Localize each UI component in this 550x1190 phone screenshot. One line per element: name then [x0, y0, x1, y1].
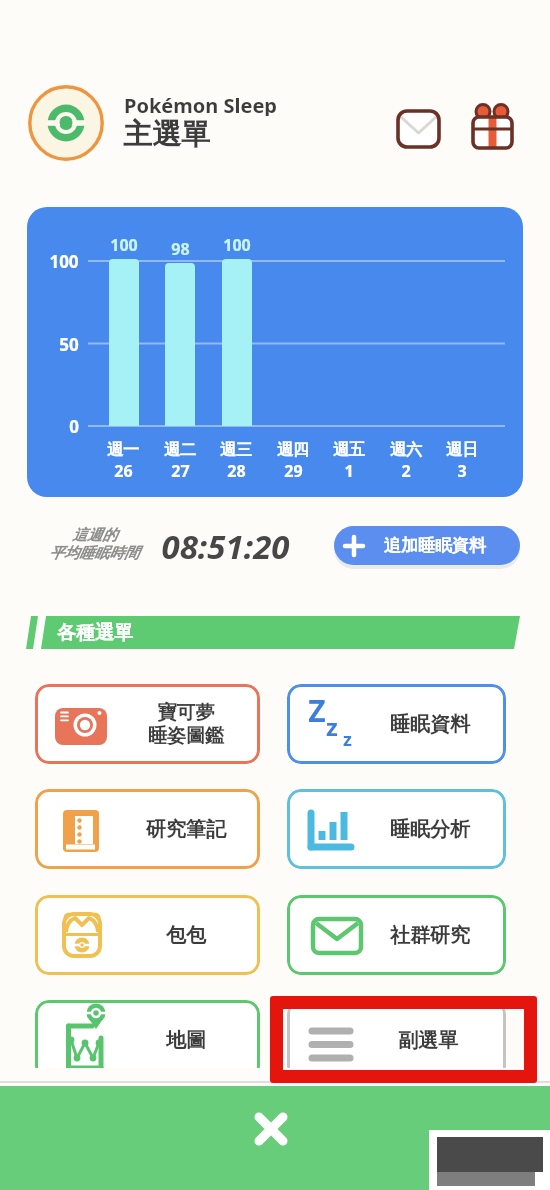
staticText: 週日 [446, 440, 478, 460]
button[interactable]: 研究筆記 [35, 789, 260, 869]
staticText: Z [308, 690, 326, 726]
button[interactable] [394, 107, 442, 151]
staticText: 27 [171, 460, 190, 482]
staticText: 98 [171, 238, 190, 260]
staticText: 週二 [164, 440, 196, 460]
staticText: 平均睡眠時間 [49, 544, 139, 563]
staticText: 社群研究 [390, 923, 470, 948]
button[interactable]: 睡眠分析 [287, 789, 506, 869]
staticText: 1 [344, 460, 354, 482]
button[interactable]: 地圖 [35, 1000, 260, 1080]
button[interactable] [0, 1086, 550, 1190]
staticText: 主選單 [123, 116, 210, 152]
staticText: 週四 [277, 440, 309, 460]
staticText: 這週的 [72, 526, 117, 545]
staticText: 50 [59, 333, 79, 356]
staticText: 包包 [166, 923, 206, 948]
staticText: 28 [227, 460, 246, 482]
staticText: Pokémon Sleep [124, 92, 277, 116]
staticText: 研究筆記 [146, 817, 226, 842]
staticText: 寶可夢 睡姿圖鑑 [148, 701, 224, 748]
staticText: z [326, 710, 338, 740]
staticText: z [343, 727, 352, 752]
staticText: 週三 [220, 440, 252, 460]
staticText: 08:51:20 [161, 524, 290, 568]
staticText: 100 [49, 250, 79, 273]
button[interactable] [468, 100, 518, 152]
button[interactable]: 副選單 [287, 1000, 506, 1080]
staticText: 各種選單 [57, 621, 133, 645]
staticText: 100 [110, 234, 138, 256]
staticText: 副選單 [398, 1028, 458, 1053]
button[interactable]: 寶可夢 睡姿圖鑑 [35, 684, 260, 764]
staticText: 0 [69, 415, 79, 438]
button[interactable]: Z [287, 684, 506, 764]
staticText: 睡眠資料 [390, 712, 470, 737]
staticText: 3 [457, 460, 467, 482]
staticText: 2 [401, 460, 411, 482]
staticText: 地圖 [166, 1028, 206, 1053]
staticText: 睡眠分析 [390, 817, 470, 842]
staticText: 追加睡眠資料 [384, 535, 486, 556]
staticText: 29 [284, 460, 303, 482]
button[interactable]: 追加睡眠資料 [334, 526, 520, 565]
staticText: 週一 [107, 440, 139, 460]
staticText: 26 [114, 460, 133, 482]
staticText: 100 [223, 234, 251, 256]
button[interactable]: 社群研究 [287, 895, 506, 975]
staticText: 週五 [333, 440, 365, 460]
button[interactable]: 包包 [35, 895, 260, 975]
staticText: 週六 [390, 440, 422, 460]
